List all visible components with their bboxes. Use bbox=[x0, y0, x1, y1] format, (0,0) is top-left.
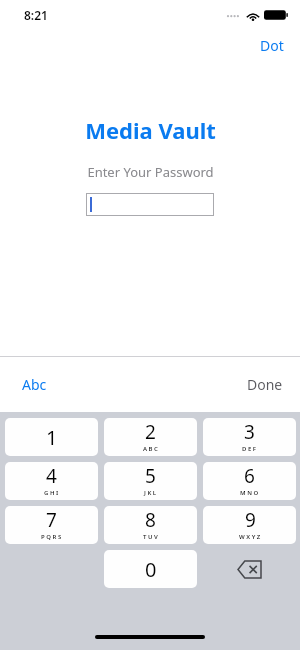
staticText: Enter Your Password bbox=[87, 163, 214, 181]
button[interactable]: 6 bbox=[203, 462, 296, 500]
staticText: 1 bbox=[46, 424, 58, 451]
staticText: Dot bbox=[260, 36, 284, 55]
button[interactable]: Abc bbox=[10, 367, 59, 402]
staticText: 6 bbox=[244, 463, 255, 489]
button[interactable]: 3 bbox=[203, 418, 296, 456]
staticText: A B C bbox=[143, 445, 158, 453]
button[interactable]: 5 bbox=[104, 462, 197, 500]
staticText: J K L bbox=[144, 489, 157, 497]
staticText: M N O bbox=[240, 489, 259, 497]
button[interactable]: 9 bbox=[203, 506, 296, 544]
button[interactable]: Dot bbox=[244, 32, 300, 59]
staticText: 4 bbox=[46, 463, 57, 489]
button[interactable] bbox=[86, 193, 214, 216]
staticText: 0 bbox=[145, 556, 157, 583]
staticText: Media Vault bbox=[85, 115, 216, 145]
staticText: 9 bbox=[245, 507, 256, 533]
button[interactable]: 4 bbox=[5, 462, 98, 500]
staticText: W X Y Z bbox=[239, 533, 261, 541]
staticText: Abc bbox=[22, 375, 47, 394]
staticText: G H I bbox=[44, 489, 59, 497]
staticText: 5 bbox=[145, 463, 156, 489]
button[interactable]: 0 bbox=[104, 550, 197, 588]
button[interactable]: Delete bbox=[203, 550, 296, 588]
staticText: P Q R S bbox=[41, 533, 62, 541]
staticText: 2 bbox=[145, 419, 156, 445]
staticText: Done bbox=[247, 375, 283, 394]
staticText: 8 bbox=[145, 507, 156, 533]
staticText: 7 bbox=[46, 507, 57, 533]
button[interactable]: 2 bbox=[104, 418, 197, 456]
button[interactable]: 7 bbox=[5, 506, 98, 544]
button[interactable]: 8 bbox=[104, 506, 197, 544]
staticText: T U V bbox=[143, 533, 158, 541]
staticText: 8:21 bbox=[24, 7, 48, 23]
button[interactable]: Done bbox=[235, 367, 295, 402]
button[interactable]: 1 bbox=[5, 418, 98, 456]
staticText: 3 bbox=[244, 419, 255, 445]
staticText: D E F bbox=[242, 445, 257, 453]
